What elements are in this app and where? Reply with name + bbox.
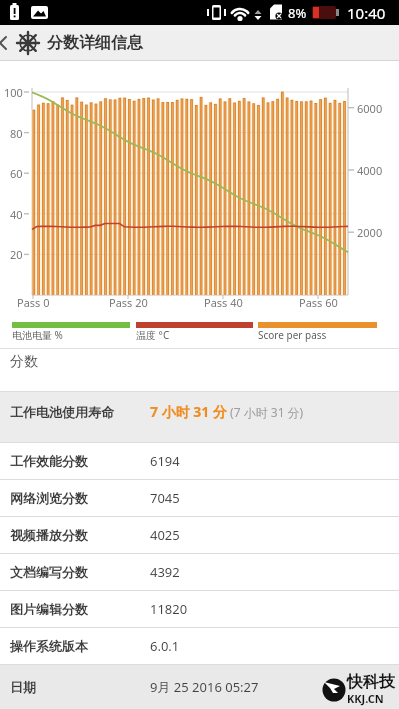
staticText: 7045 <box>150 489 180 507</box>
staticText: 6000 <box>357 101 383 116</box>
staticText: 分数详细信息 <box>47 33 143 53</box>
staticText: Pass 20 <box>109 295 148 310</box>
staticText: Pass 40 <box>204 295 243 310</box>
button[interactable]: 工作电池使用寿命 <box>0 391 399 442</box>
staticText: KKJ.CN <box>347 691 384 706</box>
staticText: 100 <box>4 85 23 100</box>
staticText: 40 <box>10 207 23 222</box>
staticText: 10:40 <box>347 3 386 23</box>
staticText: 20 <box>10 247 23 262</box>
staticText: 电池电量 % <box>12 328 63 342</box>
button[interactable]: 工作效能分数 <box>0 442 399 479</box>
button[interactable]: 操作系统版本 <box>0 627 399 664</box>
staticText: 6.0.1 <box>150 637 180 655</box>
button[interactable]: 分数详细信息 <box>0 25 399 61</box>
staticText: 快科技 <box>347 672 395 692</box>
staticText: 温度 °C <box>136 328 170 342</box>
staticText: 60 <box>10 166 23 181</box>
button[interactable]: 日期 <box>0 664 399 709</box>
staticText: Pass 60 <box>299 295 338 310</box>
staticText: 工作效能分数 <box>10 453 88 469</box>
staticText: 日期 <box>10 679 36 695</box>
staticText: 网络浏览分数 <box>10 490 88 506</box>
staticText: 7 小时 31 分 (7 小时 31 分) <box>150 402 304 421</box>
staticText: 9月 25 2016 05:27 <box>150 678 259 696</box>
staticText: 80 <box>10 126 23 141</box>
staticText: 4000 <box>357 163 383 178</box>
button[interactable]: 图片编辑分数 <box>0 590 399 627</box>
button[interactable]: 视频播放分数 <box>0 516 399 553</box>
staticText: Pass 0 <box>17 295 50 310</box>
staticText: 2000 <box>357 225 383 240</box>
staticText: 4025 <box>150 526 180 544</box>
staticText: 视频播放分数 <box>10 527 88 543</box>
button[interactable]: 网络浏览分数 <box>0 479 399 516</box>
staticText: 8% <box>288 4 307 22</box>
staticText: 工作电池使用寿命 <box>10 404 114 420</box>
staticText: 6194 <box>150 452 180 470</box>
staticText: 分数 <box>10 353 38 371</box>
staticText: 11820 <box>150 600 188 618</box>
button[interactable]: 文档编写分数 <box>0 553 399 590</box>
staticText: 4392 <box>150 563 180 581</box>
staticText: 文档编写分数 <box>10 564 88 580</box>
staticText: Score per pass <box>258 328 327 342</box>
staticText: 图片编辑分数 <box>10 601 88 617</box>
staticText: 操作系统版本 <box>10 638 88 654</box>
